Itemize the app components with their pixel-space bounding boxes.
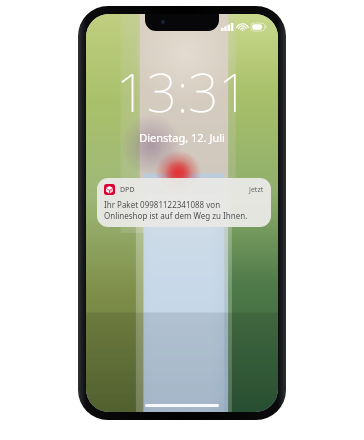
staticText: Ihr Paket 09981122341088 von Onlineshop … [104, 199, 264, 221]
staticText: 13:31 [116, 55, 249, 127]
staticText: Dienstag, 12. Juli [139, 130, 225, 145]
button[interactable]: DPD [97, 178, 271, 227]
staticText: Jetzt [249, 185, 264, 195]
staticText: DPD [120, 185, 135, 195]
